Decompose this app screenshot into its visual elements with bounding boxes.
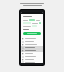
button[interactable]: Item icon: [21, 61, 43, 63]
button[interactable]: Item icon: [21, 37, 43, 40]
other: Item icon: [22, 59, 24, 61]
other: Item icon: [22, 44, 24, 46]
button[interactable]: Item icon: [21, 55, 43, 58]
button[interactable]: Item icon: [21, 49, 43, 52]
other: Item icon: [22, 38, 24, 40]
button[interactable]: Item icon: [21, 52, 43, 55]
button[interactable]: Item icon: [21, 58, 43, 61]
button[interactable]: Item icon: [21, 40, 43, 43]
other: Item icon: [22, 50, 24, 52]
button[interactable]: Item icon: [21, 43, 43, 46]
other: Item icon: [22, 53, 24, 55]
button[interactable]: Item icon: [21, 46, 43, 49]
button[interactable]: [23, 32, 41, 35]
